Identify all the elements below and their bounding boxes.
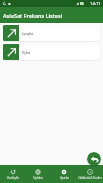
button[interactable]: Back <box>87 152 101 166</box>
staticText: FlySat <box>22 51 31 55</box>
staticText: 14:11 <box>90 1 101 7</box>
button[interactable]: Uydular <box>25 165 51 183</box>
staticText: Uydular <box>33 176 43 180</box>
staticText: LyngSat <box>22 32 34 36</box>
button[interactable]: LyngSat <box>3 25 100 41</box>
button[interactable]: AnaSayfa <box>0 165 25 183</box>
button[interactable]: FlySat <box>3 44 100 60</box>
staticText: Hakkinda & Yardim <box>78 176 102 180</box>
button[interactable]: Ayarlar <box>51 165 77 183</box>
button[interactable]: Hakkinda & Yardim <box>77 165 103 183</box>
staticText: Ayarlar <box>60 176 69 180</box>
staticText: AnaSayfa <box>7 176 19 180</box>
staticText: AsiaSat Frekans Listesi <box>3 12 63 19</box>
